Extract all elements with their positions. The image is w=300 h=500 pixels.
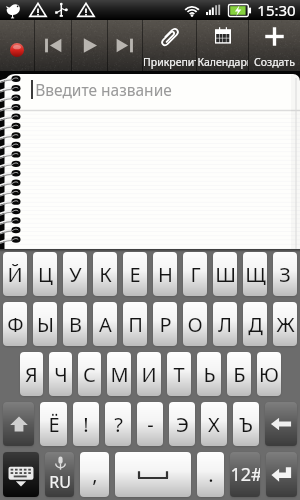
- staticText: П: [128, 311, 143, 338]
- staticText: Е: [129, 261, 141, 288]
- staticText: 15:30: [257, 0, 296, 20]
- button[interactable]: Е: [123, 252, 147, 296]
- button[interactable]: Ш: [213, 252, 237, 296]
- button[interactable]: В: [63, 302, 87, 346]
- button[interactable]: Previous: [35, 20, 71, 71]
- button[interactable]: ?: [105, 402, 131, 446]
- button[interactable]: ,: [80, 452, 109, 497]
- button[interactable]: Play: [72, 20, 107, 71]
- button[interactable]: Э: [169, 402, 195, 446]
- button[interactable]: Ц: [33, 252, 57, 296]
- button[interactable]: Ч: [49, 352, 72, 396]
- staticText: Ж: [276, 311, 295, 338]
- button[interactable]: Record: [0, 20, 34, 71]
- button[interactable]: М: [107, 352, 131, 396]
- button[interactable]: Hide keyboard: [3, 452, 39, 497]
- button[interactable]: Щ: [243, 252, 267, 296]
- button[interactable]: Shift: [3, 402, 34, 446]
- button[interactable]: Voice input, RU: [45, 452, 74, 497]
- button[interactable]: 12#: [230, 452, 260, 497]
- staticText: Создать: [254, 55, 295, 69]
- staticText: И: [141, 361, 157, 388]
- button[interactable]: П: [123, 302, 147, 346]
- button[interactable]: Х: [201, 402, 227, 446]
- button[interactable]: З: [273, 252, 297, 296]
- button[interactable]: Ю: [257, 352, 281, 396]
- button[interactable]: Ф: [3, 302, 27, 346]
- staticText: Й: [7, 261, 23, 288]
- button[interactable]: Space: [115, 452, 191, 497]
- staticText: К: [99, 261, 112, 288]
- button[interactable]: Т: [167, 352, 191, 396]
- button[interactable]: К: [93, 252, 117, 296]
- staticText: Я: [25, 361, 38, 388]
- staticText: Д: [248, 311, 263, 338]
- staticText: Г: [190, 261, 201, 288]
- staticText: Ё: [48, 411, 60, 438]
- staticText: !: [83, 411, 89, 438]
- button[interactable]: Ы: [33, 302, 57, 346]
- staticText: У: [69, 261, 82, 288]
- staticText: З: [279, 261, 291, 288]
- staticText: Прикрепить: [143, 55, 196, 69]
- staticText: 12#: [230, 462, 260, 487]
- staticText: Р: [159, 311, 172, 338]
- staticText: М: [110, 361, 129, 388]
- staticText: Ъ: [239, 411, 253, 438]
- staticText: О: [187, 311, 203, 338]
- staticText: Календарь: [197, 55, 248, 69]
- button[interactable]: Next: [108, 20, 142, 71]
- button[interactable]: Н: [153, 252, 177, 296]
- staticText: Э: [176, 411, 189, 438]
- staticText: .: [208, 461, 214, 488]
- button[interactable]: Г: [183, 252, 207, 296]
- staticText: Т: [173, 361, 185, 388]
- button[interactable]: Я: [20, 352, 43, 396]
- button[interactable]: Календарь: [197, 20, 248, 71]
- button[interactable]: Прикрепить: [143, 20, 196, 71]
- button[interactable]: Р: [153, 302, 177, 346]
- button[interactable]: У: [63, 252, 87, 296]
- staticText: Ч: [54, 361, 68, 388]
- button[interactable]: Д: [243, 302, 267, 346]
- staticText: Х: [208, 411, 220, 438]
- button[interactable]: Ё: [40, 402, 67, 446]
- staticText: Ь: [203, 361, 216, 388]
- button[interactable]: И: [137, 352, 161, 396]
- staticText: Б: [233, 361, 246, 388]
- staticText: -: [147, 411, 154, 438]
- button[interactable]: С: [78, 352, 101, 396]
- staticText: Н: [158, 261, 173, 288]
- staticText: RU: [49, 471, 71, 493]
- staticText: С: [83, 361, 96, 388]
- staticText: ,: [92, 461, 98, 488]
- staticText: Ы: [37, 311, 54, 338]
- button[interactable]: Enter: [266, 452, 297, 497]
- staticText: А: [99, 311, 112, 338]
- staticText: ?: [114, 411, 123, 438]
- staticText: Ф: [7, 311, 24, 338]
- staticText: Ш: [215, 261, 236, 288]
- staticText: Щ: [245, 261, 266, 288]
- button[interactable]: Создать: [249, 20, 300, 71]
- staticText: Ю: [259, 361, 279, 388]
- button[interactable]: О: [183, 302, 207, 346]
- button[interactable]: !: [73, 402, 99, 446]
- staticText: Л: [218, 311, 232, 338]
- button[interactable]: Backspace: [265, 402, 297, 446]
- button[interactable]: Ь: [197, 352, 221, 396]
- button[interactable]: Й: [3, 252, 27, 296]
- button[interactable]: А: [93, 302, 117, 346]
- button[interactable]: Б: [227, 352, 251, 396]
- staticText: Ц: [38, 261, 53, 288]
- staticText: Введите название: [35, 79, 172, 100]
- button[interactable]: -: [137, 402, 163, 446]
- staticText: В: [69, 311, 82, 338]
- button[interactable]: .: [197, 452, 224, 497]
- button[interactable]: Л: [213, 302, 237, 346]
- button[interactable]: Ъ: [233, 402, 259, 446]
- button[interactable]: Ж: [273, 302, 297, 346]
